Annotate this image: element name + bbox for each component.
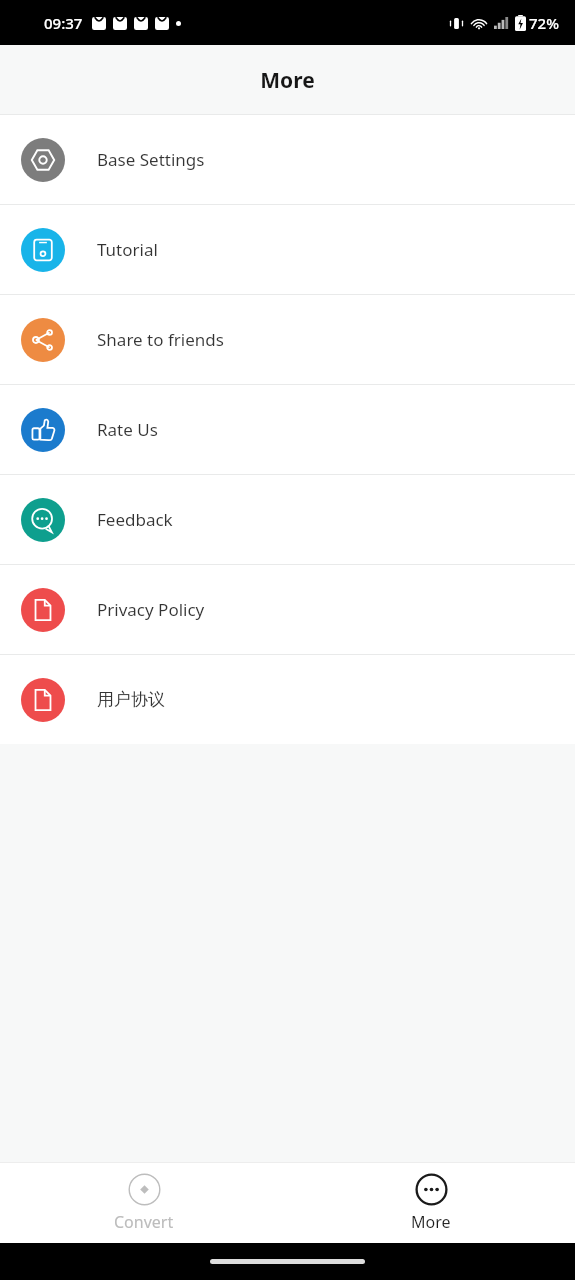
staticText: More — [260, 66, 315, 95]
staticText: Convert — [114, 1211, 174, 1233]
button[interactable]: Base Settings — [0, 115, 575, 204]
staticText: Feedback — [97, 508, 173, 531]
staticText: 09:37 — [44, 13, 83, 33]
button[interactable]: Rate Us — [0, 385, 575, 474]
button[interactable]: Privacy Policy — [0, 565, 575, 654]
staticText: More — [411, 1211, 451, 1233]
button[interactable]: Feedback — [0, 475, 575, 564]
staticText: Base Settings — [97, 148, 205, 171]
button[interactable]: 用户协议 — [0, 655, 575, 744]
staticText: 72% — [529, 13, 559, 33]
other: Convert — [128, 1173, 161, 1206]
other: More — [415, 1173, 448, 1206]
staticText: Share to friends — [97, 328, 224, 351]
staticText: Rate Us — [97, 418, 158, 441]
staticText: Privacy Policy — [97, 598, 205, 621]
button[interactable]: Share to friends — [0, 295, 575, 384]
button[interactable]: Convert — [88, 1167, 200, 1239]
staticText: 用户协议 — [97, 689, 165, 710]
staticText: Tutorial — [97, 238, 158, 261]
button[interactable]: More — [385, 1167, 477, 1239]
button[interactable]: Tutorial — [0, 205, 575, 294]
